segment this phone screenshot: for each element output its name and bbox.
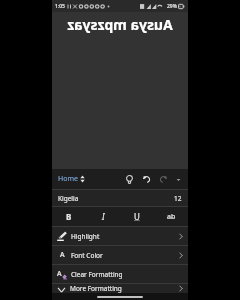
button[interactable]: Undo xyxy=(140,173,153,186)
button[interactable]: A xyxy=(52,265,188,283)
button[interactable]: A xyxy=(52,246,188,264)
button[interactable]: Italic xyxy=(86,207,120,226)
staticText: 12 xyxy=(174,194,182,203)
staticText: Home xyxy=(58,174,78,184)
button[interactable]: Kigelia xyxy=(52,190,188,206)
button[interactable]: More Formatting xyxy=(52,284,188,293)
button[interactable]: Home xyxy=(57,173,86,185)
button[interactable]: Redo xyxy=(157,173,170,186)
staticText: More Formatting xyxy=(70,284,122,293)
button[interactable]: Strikethrough xyxy=(154,207,188,226)
staticText: ab xyxy=(167,212,176,222)
staticText: B xyxy=(66,211,72,222)
staticText: Ausya mpzsyaz xyxy=(67,15,173,34)
button[interactable]: Highlighter tool xyxy=(123,173,136,186)
staticText: 1:05 xyxy=(55,3,65,10)
staticText: Font Color xyxy=(71,251,103,260)
staticText: Highlight xyxy=(71,232,100,241)
staticText: 29% xyxy=(167,3,177,10)
button[interactable]: Underline xyxy=(120,207,154,226)
button[interactable]: Bold xyxy=(52,207,86,226)
staticText: Kigelia xyxy=(58,194,79,203)
staticText: Clear Formatting xyxy=(71,270,123,279)
button[interactable]: Highlight xyxy=(52,227,188,245)
staticText: A xyxy=(57,269,62,279)
staticText: I xyxy=(102,211,105,222)
staticText: U xyxy=(134,211,140,222)
staticText: A xyxy=(60,250,65,260)
button[interactable]: More options xyxy=(173,174,184,185)
